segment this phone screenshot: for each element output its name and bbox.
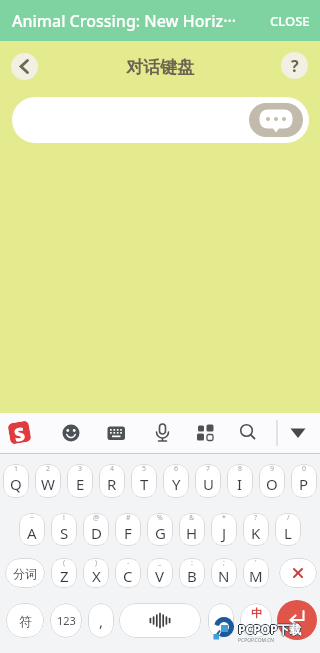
staticText: * bbox=[222, 513, 226, 523]
button[interactable]: 2 bbox=[35, 464, 61, 498]
staticText: 9 bbox=[270, 464, 275, 474]
button[interactable]: ? bbox=[243, 513, 269, 546]
button[interactable]: 1 bbox=[3, 464, 29, 498]
button[interactable]: : bbox=[179, 558, 205, 588]
staticText: V bbox=[155, 566, 165, 586]
button[interactable]: ~ bbox=[19, 513, 45, 546]
button[interactable]: 5 bbox=[131, 464, 157, 498]
staticText: @ bbox=[93, 513, 100, 523]
button[interactable] bbox=[11, 53, 38, 80]
button[interactable]: _ bbox=[147, 558, 173, 588]
staticText: CLOSE bbox=[270, 12, 310, 30]
staticText: L bbox=[284, 523, 292, 543]
button[interactable]: 分词 bbox=[5, 558, 45, 588]
button[interactable]: 3 bbox=[67, 464, 93, 498]
button[interactable]: 9 bbox=[259, 464, 285, 498]
staticText: A bbox=[27, 523, 37, 543]
staticText: 4 bbox=[110, 464, 115, 474]
staticText: B bbox=[187, 566, 197, 586]
button[interactable] bbox=[119, 603, 201, 638]
staticText: Z bbox=[60, 566, 69, 586]
staticText: & bbox=[189, 513, 195, 523]
staticText: 符 bbox=[19, 613, 32, 629]
button[interactable]: 6 bbox=[163, 464, 189, 498]
staticText: W bbox=[41, 474, 55, 494]
staticText: K bbox=[251, 523, 261, 543]
button[interactable]: 。 bbox=[208, 603, 234, 638]
button[interactable]: 123 bbox=[50, 603, 82, 638]
button[interactable]: CLOSE bbox=[270, 12, 310, 30]
staticText: D bbox=[91, 523, 102, 543]
button[interactable]: ( bbox=[51, 558, 77, 588]
staticText: S bbox=[60, 523, 69, 543]
staticText: ; bbox=[223, 558, 225, 568]
button[interactable]: @ bbox=[83, 513, 109, 546]
staticText: 7 bbox=[206, 464, 211, 474]
staticText: Animal Crossing: New Horiz··· bbox=[12, 10, 237, 32]
staticText: C bbox=[123, 566, 133, 586]
staticText: / bbox=[287, 513, 290, 523]
staticText: ~ bbox=[30, 513, 35, 523]
staticText: PCPOP下载 bbox=[238, 621, 302, 637]
staticText: Q bbox=[10, 474, 22, 494]
staticText: PCPOP下载 bbox=[238, 620, 302, 636]
button[interactable]: # bbox=[115, 513, 141, 546]
button[interactable]: / bbox=[275, 513, 301, 546]
staticText: 对话键盘 bbox=[126, 57, 194, 78]
button[interactable]: 符 bbox=[6, 603, 44, 638]
button[interactable]: S bbox=[7, 420, 32, 445]
button[interactable] bbox=[249, 103, 303, 137]
staticText: 6 bbox=[174, 464, 179, 474]
button[interactable] bbox=[277, 600, 317, 640]
button[interactable]: - bbox=[115, 558, 141, 588]
button[interactable] bbox=[193, 421, 217, 445]
button[interactable]: * bbox=[211, 513, 237, 546]
staticText: PCPOP下载 bbox=[238, 622, 302, 638]
staticText: F bbox=[124, 523, 132, 543]
staticText: % bbox=[157, 513, 163, 523]
staticText: PCPOP下载 bbox=[237, 621, 301, 637]
button[interactable] bbox=[234, 421, 258, 445]
staticText: P bbox=[299, 474, 309, 494]
button[interactable]: 0 bbox=[291, 464, 317, 498]
button[interactable] bbox=[150, 421, 174, 445]
staticText: 0 bbox=[302, 464, 307, 474]
staticText: M bbox=[249, 566, 263, 586]
button[interactable]: 中 bbox=[240, 603, 272, 638]
button[interactable]: 7 bbox=[195, 464, 221, 498]
button[interactable]: ) bbox=[83, 558, 109, 588]
staticText: /英 bbox=[250, 622, 263, 634]
staticText: 8 bbox=[238, 464, 243, 474]
staticText: S bbox=[12, 421, 27, 444]
button[interactable]: , bbox=[88, 603, 114, 638]
button[interactable]: 4 bbox=[99, 464, 125, 498]
staticText: PCPOP.COM.CN bbox=[238, 637, 275, 644]
button[interactable]: ' bbox=[243, 558, 269, 588]
button[interactable] bbox=[12, 97, 309, 143]
staticText: ? bbox=[291, 55, 299, 77]
staticText: PCPOP下载 bbox=[239, 621, 303, 637]
staticText: ) bbox=[95, 558, 98, 568]
button[interactable] bbox=[104, 421, 128, 445]
staticText: E bbox=[76, 474, 85, 494]
button[interactable]: % bbox=[147, 513, 173, 546]
staticText: J bbox=[222, 523, 227, 543]
staticText: 2 bbox=[46, 464, 51, 474]
button[interactable] bbox=[286, 421, 310, 445]
staticText: 1 bbox=[14, 464, 19, 474]
staticText: N bbox=[218, 566, 230, 586]
staticText: ( bbox=[63, 558, 66, 568]
button[interactable] bbox=[279, 558, 317, 588]
staticText: U bbox=[203, 474, 214, 494]
staticText: 分词 bbox=[13, 566, 37, 581]
button[interactable]: & bbox=[179, 513, 205, 546]
button[interactable]: ? bbox=[281, 52, 308, 79]
staticText: G bbox=[155, 523, 166, 543]
button[interactable]: ; bbox=[211, 558, 237, 588]
button[interactable]: ! bbox=[51, 513, 77, 546]
staticText: T bbox=[140, 474, 149, 494]
staticText: R bbox=[107, 474, 117, 494]
staticText: O bbox=[266, 474, 278, 494]
button[interactable]: 8 bbox=[227, 464, 253, 498]
button[interactable] bbox=[59, 421, 83, 445]
